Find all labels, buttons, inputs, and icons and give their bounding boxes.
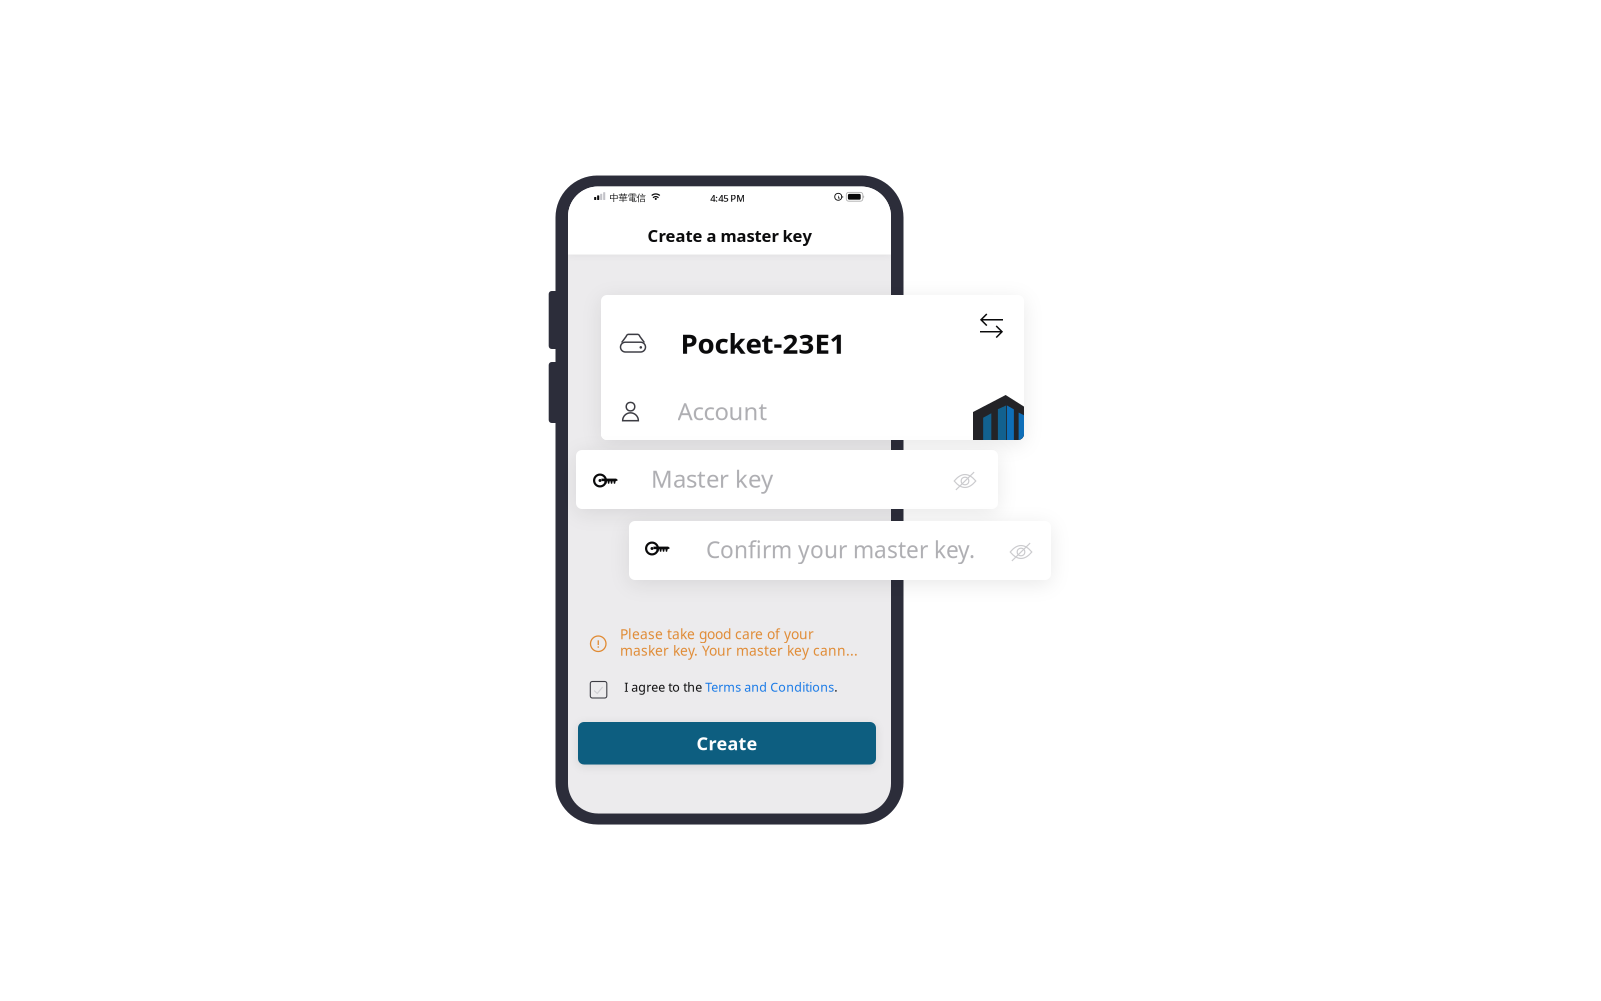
staticText: Create a master key [647,224,811,246]
staticText: I agree to the [624,679,705,695]
staticText: Account [677,395,767,427]
button[interactable]: Account [601,388,941,440]
button[interactable]: Show master key [953,471,977,490]
staticText: . [834,679,837,695]
staticText: Confirm your master key. [706,534,975,564]
staticText: Create [696,731,757,755]
button[interactable]: Create a master key [568,218,891,252]
staticText: Please take good care of your [620,625,814,643]
button[interactable]: Master key [576,450,998,509]
staticText: masker key. Your master key cann... [620,641,858,660]
button[interactable]: I agree to the [590,676,838,698]
button[interactable]: Switch device [980,312,1003,338]
staticText: Pocket-23E1 [680,325,845,361]
button[interactable]: Create [578,722,876,764]
staticText: Terms and Conditions [705,679,834,695]
staticText: Master key [651,463,773,494]
staticText: 中華電信 [609,192,645,204]
button[interactable]: Show confirmation master key [1009,542,1033,561]
staticText: 4:45 PM [710,192,745,204]
button[interactable]: Confirm your master key. [629,521,1051,580]
